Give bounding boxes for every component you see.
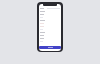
button[interactable] <box>39 40 61 43</box>
button[interactable] <box>39 7 61 10</box>
button[interactable] <box>39 25 61 28</box>
button[interactable] <box>39 46 61 49</box>
button[interactable] <box>39 34 61 37</box>
button[interactable] <box>39 28 61 31</box>
button[interactable] <box>39 10 61 13</box>
button[interactable] <box>39 13 61 16</box>
button[interactable] <box>39 37 61 40</box>
button[interactable] <box>39 16 61 19</box>
button[interactable] <box>39 22 61 25</box>
button[interactable] <box>39 19 61 22</box>
button[interactable] <box>39 31 61 34</box>
